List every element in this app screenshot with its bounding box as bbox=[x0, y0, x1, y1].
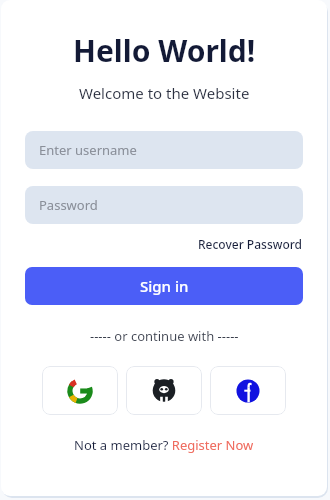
staticText: ----- or continue with ----- bbox=[90, 327, 239, 345]
staticText: Sign in bbox=[140, 276, 189, 296]
staticText: Welcome to the Website bbox=[79, 83, 250, 103]
button[interactable]: Enter username bbox=[25, 131, 303, 169]
staticText: Recover Password bbox=[198, 236, 303, 252]
button[interactable]: Sign in with Facebook bbox=[210, 366, 286, 415]
staticText: Password bbox=[39, 196, 98, 214]
button[interactable]: Not a member? Register Now bbox=[74, 436, 254, 454]
button[interactable]: Recover Password bbox=[198, 236, 303, 252]
staticText: Not a member? Register Now bbox=[74, 436, 254, 454]
button[interactable]: Sign in with GitHub bbox=[126, 366, 202, 415]
staticText: Hello World! bbox=[73, 30, 256, 71]
button[interactable]: Password bbox=[25, 186, 303, 224]
staticText: Enter username bbox=[39, 141, 137, 159]
button[interactable]: Sign in with Google bbox=[42, 366, 118, 415]
button[interactable]: Sign in bbox=[25, 267, 303, 305]
